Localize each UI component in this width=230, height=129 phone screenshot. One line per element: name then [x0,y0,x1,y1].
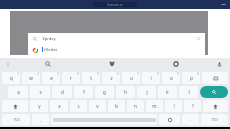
staticText: z [110,75,113,81]
button[interactable]: Clear [195,35,202,42]
button[interactable]: ?123 [201,114,228,125]
button[interactable]: m [146,100,163,112]
button[interactable]: c [70,100,87,112]
staticText: 2 [37,72,39,76]
button[interactable]: z [102,72,120,84]
button[interactable]: Space [51,114,157,125]
button[interactable]: Search [16,58,80,70]
button[interactable]: ! [165,100,182,112]
button[interactable]: d [52,86,72,98]
button[interactable]: e [42,72,60,84]
staticText: Zprávy [42,36,56,42]
staticText: x [58,103,61,109]
button[interactable]: f [74,86,93,98]
staticText: 9 [177,72,179,76]
staticText: , [40,117,42,123]
staticText: f [83,89,85,95]
button[interactable]: More [0,58,16,70]
button[interactable]: Search [200,86,228,98]
button[interactable]: y [30,100,48,112]
staticText: ? [192,103,194,109]
button[interactable]: j [137,86,156,98]
button[interactable]: Voice input [208,58,230,70]
button[interactable]: i [142,72,160,84]
button[interactable]: s [30,86,50,98]
staticText: a [17,89,20,95]
staticText: 0 [197,72,199,76]
staticText: ! [173,103,175,109]
staticText: 6 [117,72,119,76]
button[interactable]: l [179,86,198,98]
button[interactable]: g [95,86,114,98]
staticText: ?123 [211,118,218,122]
staticText: g [103,89,106,95]
button[interactable]: w [22,72,40,84]
staticText: Seznam.cz [107,3,123,7]
button[interactable]: h [116,86,135,98]
button[interactable]: b [108,100,125,112]
staticText: 7 [137,72,139,76]
staticText: m [152,103,157,109]
button[interactable]: x [50,100,68,112]
staticText: h [124,89,127,95]
button[interactable]: p [182,72,200,84]
staticText: i [150,75,152,81]
button[interactable]: k [158,86,177,98]
staticText: e [50,75,53,81]
button[interactable]: Zprávy [28,33,205,44]
button[interactable]: q [2,72,20,84]
staticText: 1 [17,72,19,76]
button[interactable]: o [162,72,180,84]
button[interactable]: u [122,72,140,84]
staticText: l [188,89,190,95]
staticText: . [190,117,192,123]
staticText: v [96,103,99,109]
staticText: 8 [157,72,159,76]
button[interactable]: n [127,100,144,112]
staticText: 4 [77,72,79,76]
staticText: q [10,75,13,81]
staticText: 3 [57,72,59,76]
staticText: t [90,75,92,81]
staticText: d [61,89,64,95]
button[interactable]: t [82,72,100,84]
staticText: p [190,75,193,81]
button[interactable]: Settings [144,58,208,70]
button[interactable]: Hledat [28,44,205,55]
button[interactable]: v [89,100,106,112]
button[interactable]: r [62,72,80,84]
staticText: Hledat [44,47,57,53]
button[interactable]: Stickers [80,58,144,70]
button[interactable]: ? [184,100,201,112]
staticText: n [134,103,137,109]
button[interactable]: ?123 [2,114,30,125]
button[interactable]: Shift [203,100,228,112]
button[interactable]: More options [220,1,227,8]
staticText: b [115,103,118,109]
staticText: o [170,75,173,81]
button[interactable]: a [8,86,28,98]
staticText: r [70,75,72,81]
staticText: ?123 [13,118,20,122]
staticText: y [38,103,41,109]
staticText: u [130,75,133,81]
button[interactable]: Emoji [159,114,180,125]
button[interactable]: Seznam.cz [93,2,137,7]
staticText: w [29,75,33,81]
staticText: k [166,89,169,95]
staticText: c [77,103,80,109]
button[interactable]: Backspace [202,72,228,84]
staticText: s [39,89,42,95]
staticText: j [146,89,148,95]
button[interactable]: Shift [2,100,28,112]
staticText: 5 [97,72,99,76]
